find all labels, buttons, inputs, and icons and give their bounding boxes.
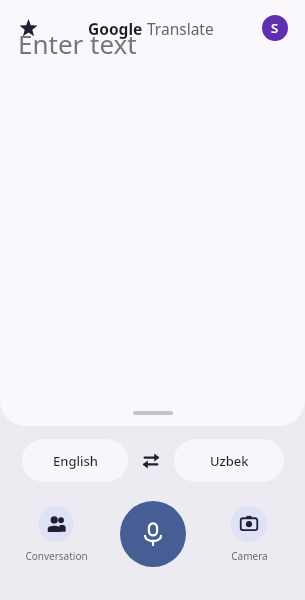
- button[interactable]: Uzbek: [174, 439, 284, 482]
- staticText: S: [271, 19, 279, 37]
- button[interactable]: Speak: [120, 501, 186, 567]
- button[interactable]: Conversation: [14, 506, 98, 563]
- staticText: Camera: [231, 549, 268, 563]
- staticText: Conversation: [25, 549, 88, 563]
- button[interactable]: Swap languages: [128, 439, 174, 482]
- button[interactable]: Enter text: [0, 16, 305, 300]
- button[interactable]: English: [22, 439, 128, 482]
- staticText: Google: [88, 18, 143, 39]
- staticText: Uzbek: [210, 452, 249, 470]
- staticText: Enter text: [18, 26, 137, 61]
- button[interactable]: Camera: [207, 506, 291, 563]
- button[interactable]: Saved: [8, 8, 48, 48]
- button[interactable]: Account: [255, 8, 295, 48]
- staticText: Translate: [147, 18, 214, 39]
- staticText: English: [53, 452, 98, 470]
